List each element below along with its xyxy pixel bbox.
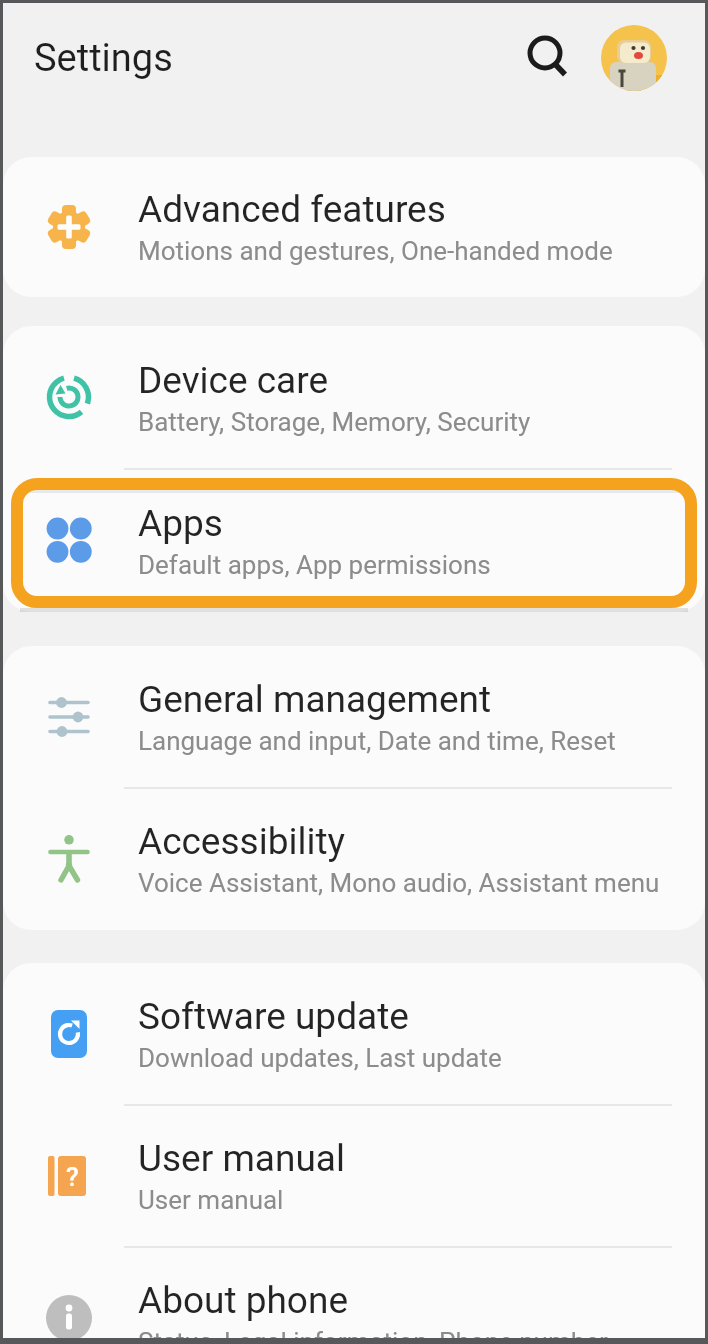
staticText: Default apps, App permissions — [138, 550, 491, 580]
staticText: Download updates, Last update — [138, 1043, 502, 1073]
button[interactable]: ? — [3, 1105, 705, 1247]
staticText: Status, Legal information, Phone number — [138, 1327, 608, 1344]
button[interactable]: Software update — [3, 963, 705, 1105]
staticText: Motions and gestures, One-handed mode — [138, 236, 613, 266]
staticText: ? — [66, 1162, 79, 1192]
staticText: Device care — [138, 359, 329, 402]
staticText: General management — [138, 678, 492, 721]
staticText: Language and input, Date and time, Reset — [138, 726, 616, 756]
staticText: Advanced features — [138, 188, 446, 231]
button[interactable]: Device care — [3, 326, 705, 469]
button[interactable] — [601, 25, 667, 91]
button[interactable]: Advanced features — [3, 157, 705, 297]
staticText: Battery, Storage, Memory, Security — [138, 407, 531, 437]
staticText: About phone — [138, 1279, 349, 1322]
staticText: Accessibility — [138, 820, 346, 863]
staticText: Settings — [34, 36, 173, 81]
button[interactable] — [523, 32, 571, 80]
staticText: User manual — [138, 1137, 345, 1180]
staticText: Software update — [138, 995, 409, 1038]
button[interactable]: Apps — [3, 469, 705, 612]
button[interactable]: General management — [3, 646, 705, 788]
button[interactable]: About phone — [3, 1247, 705, 1344]
button[interactable]: Accessibility — [3, 788, 705, 930]
staticText: User manual — [138, 1185, 284, 1215]
staticText: Apps — [138, 502, 223, 545]
staticText: Voice Assistant, Mono audio, Assistant m… — [138, 868, 660, 898]
